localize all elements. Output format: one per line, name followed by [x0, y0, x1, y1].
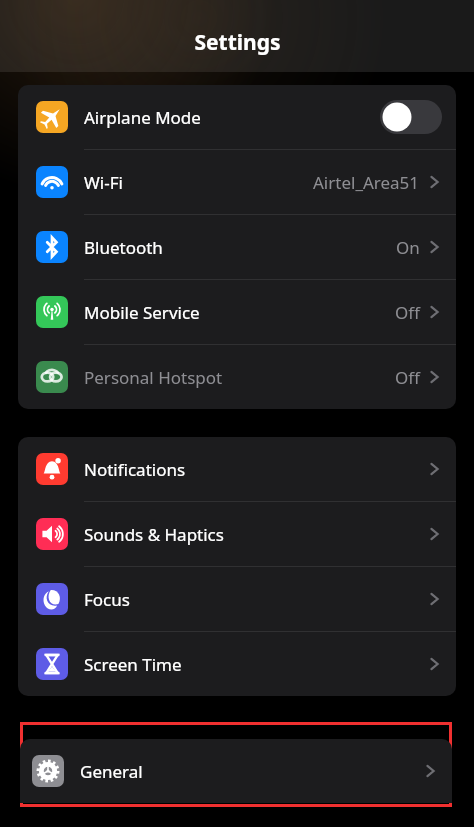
staticText: Settings	[194, 28, 281, 57]
button[interactable]: Notifications	[18, 437, 456, 501]
staticText: Bluetooth	[84, 236, 163, 259]
button[interactable]: Airplane Mode	[18, 85, 456, 149]
button[interactable]: Bluetooth	[18, 215, 456, 279]
staticText: Wi-Fi	[84, 171, 123, 194]
staticText: Screen Time	[84, 653, 182, 676]
staticText: Airplane Mode	[84, 106, 201, 129]
staticText: Off	[395, 366, 420, 389]
button[interactable]: Mobile Service	[18, 280, 456, 344]
staticText: Notifications	[84, 458, 186, 481]
staticText: Mobile Service	[84, 301, 200, 324]
staticText: Airtel_Area51	[313, 171, 420, 194]
button[interactable]: Focus	[18, 567, 456, 631]
button[interactable]: Sounds & Haptics	[18, 502, 456, 566]
button[interactable]: Personal Hotspot	[18, 345, 456, 409]
button[interactable]: Airplane Mode toggle, off	[380, 100, 442, 134]
staticText: On	[396, 236, 420, 259]
staticText: Personal Hotspot	[84, 366, 223, 389]
staticText: Focus	[84, 588, 130, 611]
staticText: General	[80, 760, 143, 783]
staticText: Sounds & Haptics	[84, 523, 224, 546]
button[interactable]: General	[20, 739, 452, 803]
button[interactable]: Screen Time	[18, 632, 456, 696]
button[interactable]: Wi-Fi	[18, 150, 456, 214]
staticText: Off	[395, 301, 420, 324]
